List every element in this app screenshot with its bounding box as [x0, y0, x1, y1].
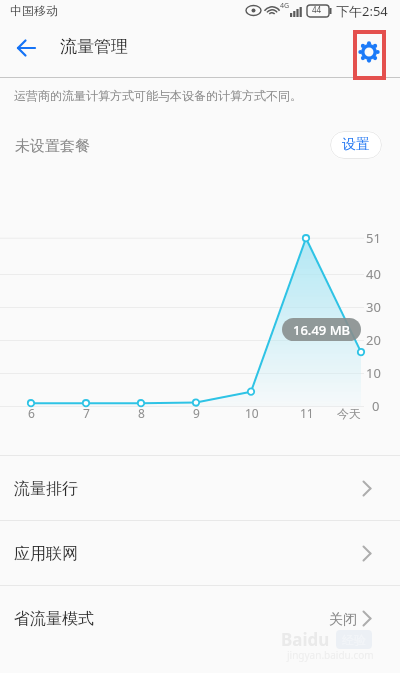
staticText: 11	[300, 405, 314, 421]
staticText: 应用联网	[14, 544, 78, 564]
staticText: 44	[312, 4, 322, 15]
staticText: 4G	[280, 1, 290, 11]
staticText: 关闭	[329, 611, 357, 629]
staticText: 下午2:54	[336, 2, 388, 20]
staticText: 省流量模式	[14, 609, 94, 629]
button[interactable]: 设置	[330, 131, 382, 159]
staticText: 今天	[337, 406, 361, 421]
staticText: Baidu	[281, 628, 330, 651]
staticText: 未设置套餐	[15, 137, 90, 156]
staticText: 16.49 MB	[293, 321, 351, 339]
staticText: 9	[193, 405, 200, 421]
button[interactable]	[8, 34, 44, 64]
staticText: 中国移动	[10, 3, 58, 18]
button[interactable]	[352, 35, 386, 69]
button[interactable]: 流量排行	[0, 456, 400, 520]
staticText: 10	[366, 364, 381, 382]
staticText: 运营商的流量计算方式可能与本设备的计算方式不同。	[14, 88, 302, 103]
staticText: 6	[28, 405, 35, 421]
staticText: 51	[366, 229, 381, 247]
staticText: 流量管理	[60, 36, 128, 57]
staticText: jingyan.baidu.com	[287, 648, 374, 662]
button[interactable]: 省流量模式	[0, 586, 400, 650]
button[interactable]: 应用联网	[0, 521, 400, 585]
staticText: 设置	[342, 136, 370, 154]
staticText: 流量排行	[14, 479, 78, 499]
staticText: 10	[245, 405, 259, 421]
staticText: 8	[138, 405, 145, 421]
staticText: 7	[83, 405, 90, 421]
staticText: 30	[366, 298, 381, 316]
staticText: 20	[366, 331, 381, 349]
staticText: 40	[366, 265, 381, 283]
staticText: 0	[372, 397, 380, 415]
